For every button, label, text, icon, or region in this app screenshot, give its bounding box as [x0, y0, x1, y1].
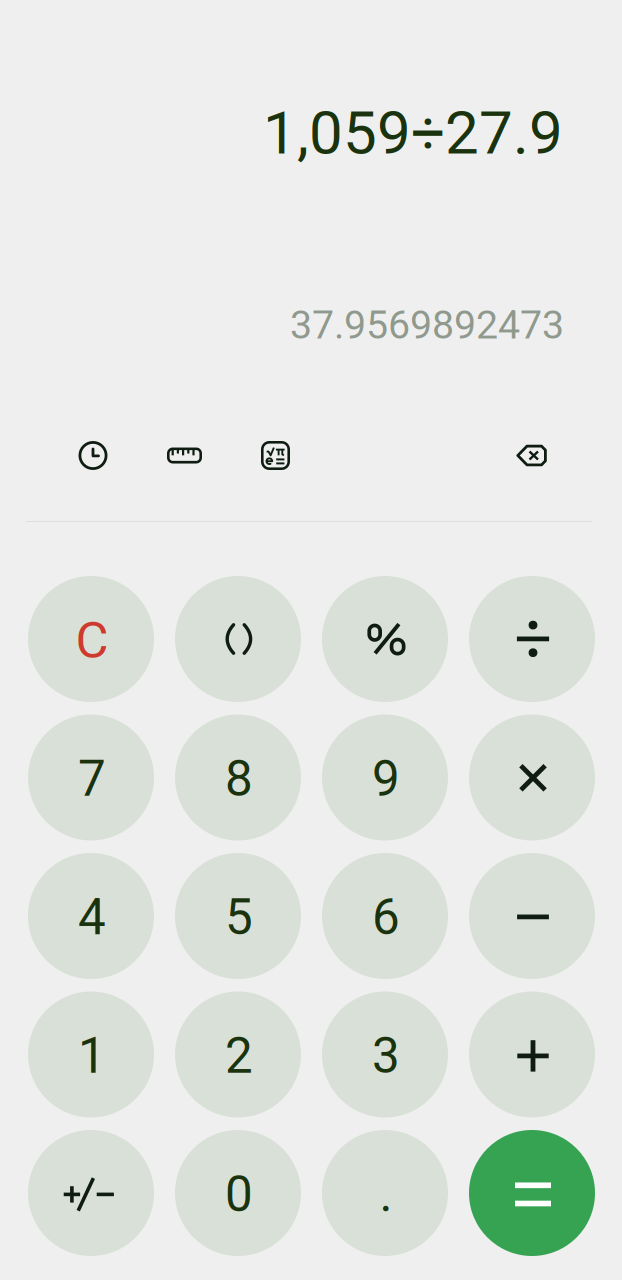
button[interactable]: Add	[469, 991, 595, 1117]
staticText: 6	[372, 888, 400, 946]
button[interactable]: Subtract	[469, 853, 595, 979]
button[interactable]: Multiply	[469, 714, 595, 840]
staticText: 1	[78, 1027, 106, 1085]
button[interactable]: Divide	[469, 576, 595, 702]
button[interactable]: Unit converter	[167, 439, 202, 471]
button[interactable]: 6	[322, 853, 448, 979]
button[interactable]: 0	[175, 1130, 301, 1256]
staticText: C	[75, 611, 108, 670]
button[interactable]: Backspace	[516, 439, 547, 471]
button[interactable]: 2	[175, 991, 301, 1117]
button[interactable]: Scientific calculator	[261, 439, 290, 471]
button[interactable]: 9	[322, 714, 448, 840]
staticText: 7	[78, 750, 106, 808]
staticText: .	[379, 1165, 392, 1223]
button[interactable]: 4	[28, 853, 154, 979]
staticText: 2	[225, 1027, 253, 1085]
staticText: 9	[372, 750, 400, 808]
staticText: 4	[78, 888, 106, 946]
button[interactable]: 1	[28, 991, 154, 1117]
button[interactable]: Equals	[469, 1130, 595, 1256]
button[interactable]: Plus minus	[28, 1130, 154, 1256]
button[interactable]: 7	[28, 714, 154, 840]
button[interactable]: Decimal point	[322, 1130, 448, 1256]
button[interactable]: 3	[322, 991, 448, 1117]
button[interactable]: Parentheses	[175, 576, 301, 702]
button[interactable]: History	[77, 439, 109, 471]
button[interactable]: 5	[175, 853, 301, 979]
staticText: 1,059÷27.9	[263, 98, 563, 168]
button[interactable]: Clear	[28, 576, 154, 702]
staticText: 8	[225, 750, 253, 808]
staticText: 3	[372, 1027, 400, 1085]
staticText: 37.9569892473	[290, 302, 564, 348]
button[interactable]: 8	[175, 714, 301, 840]
staticText: 0	[225, 1165, 253, 1223]
staticText: 5	[225, 888, 253, 946]
button[interactable]: Percent	[322, 576, 448, 702]
